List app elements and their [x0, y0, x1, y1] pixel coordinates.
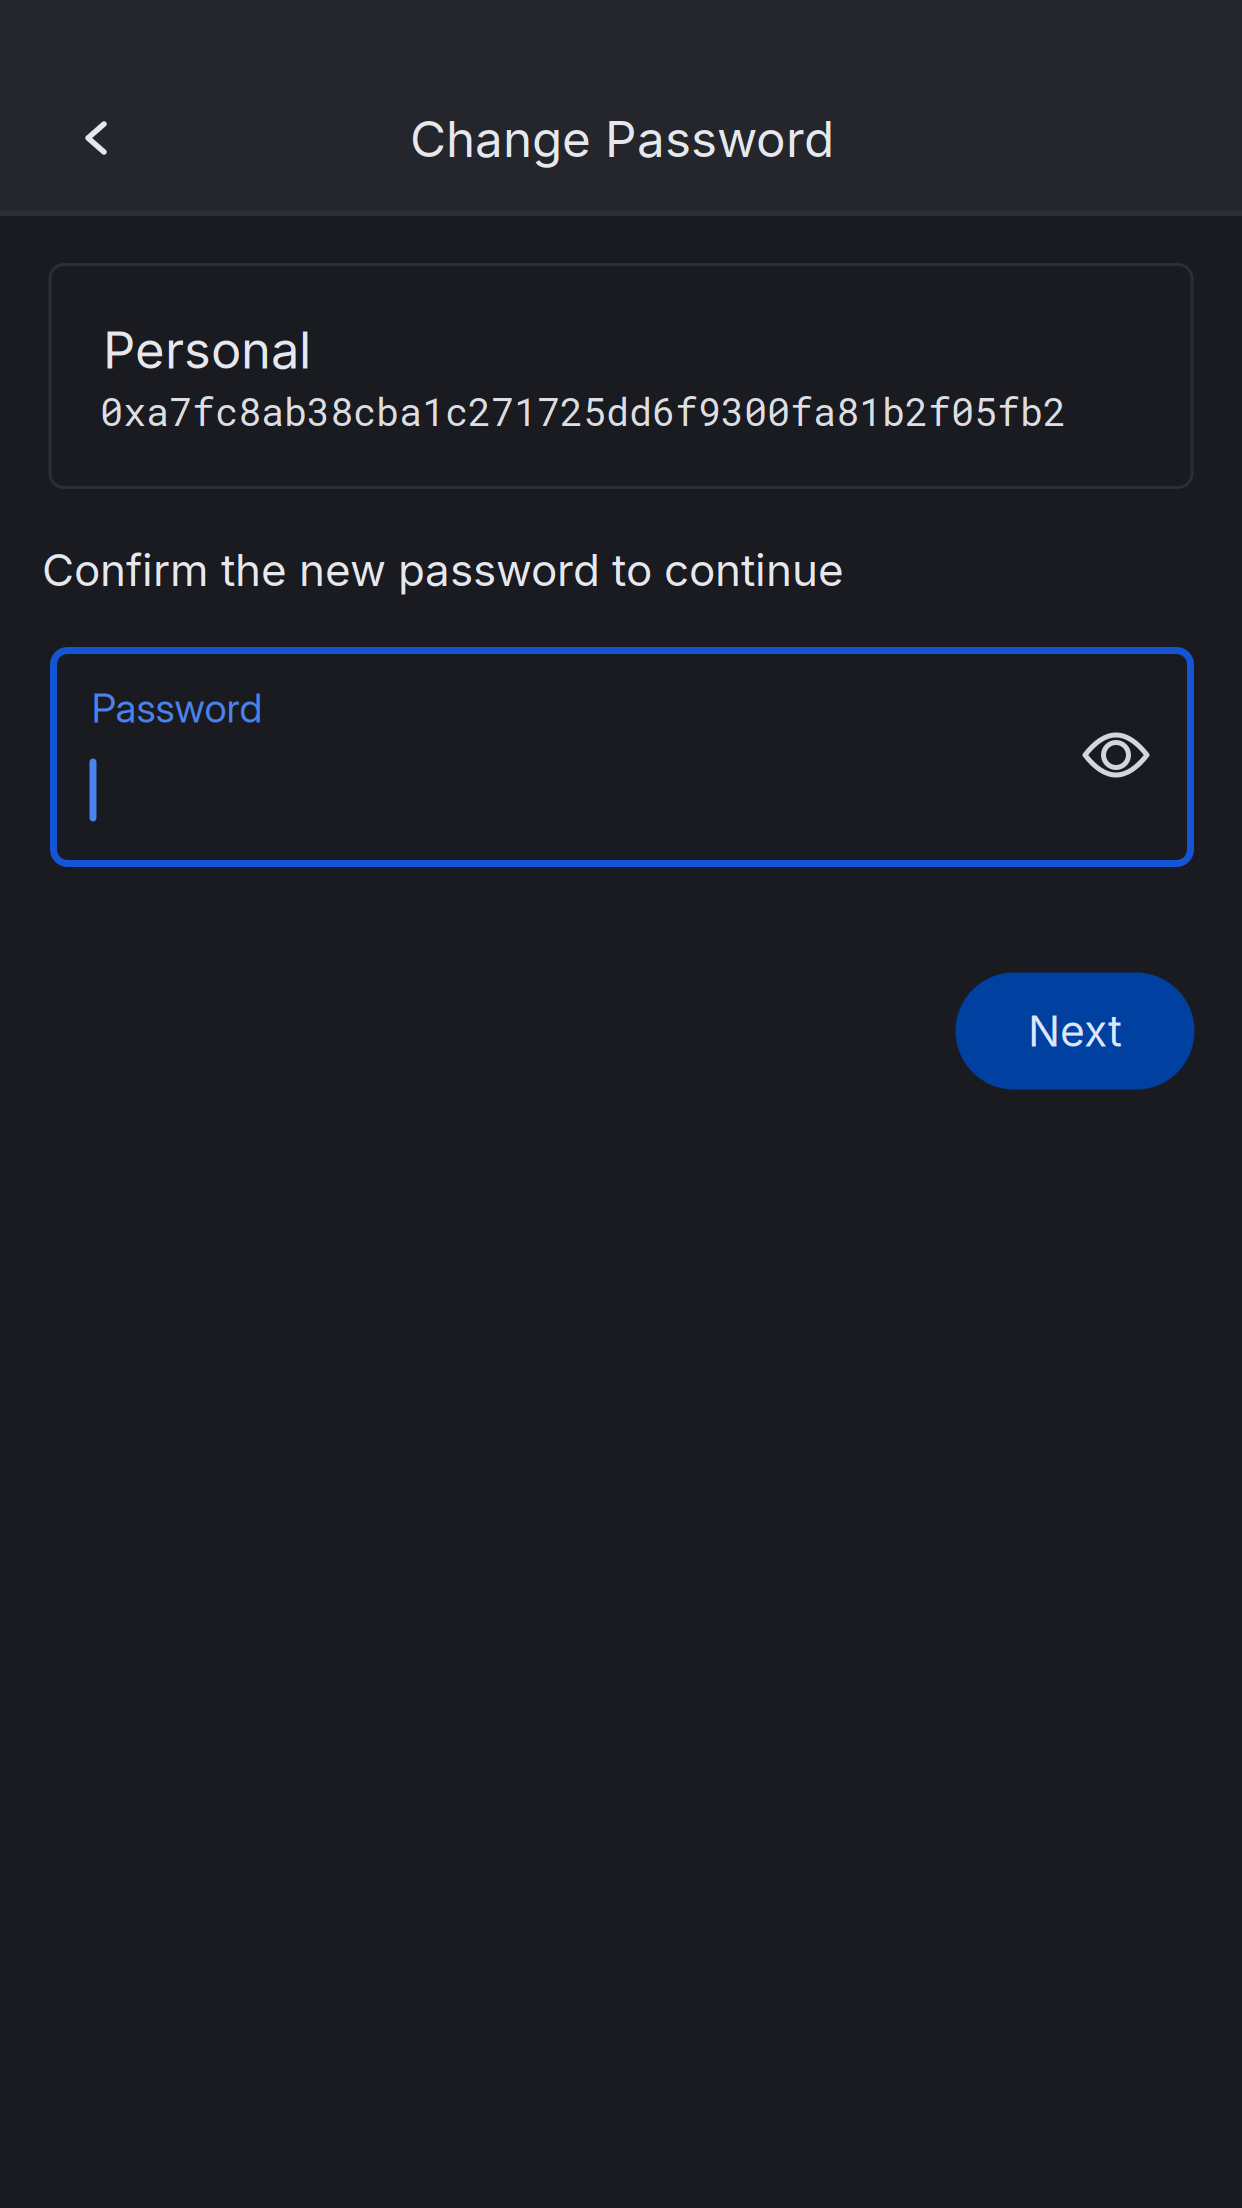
button[interactable]: Next	[955, 972, 1194, 1089]
staticText: Personal	[103, 319, 311, 381]
button[interactable]: Show password	[1057, 696, 1175, 814]
button[interactable]: Back	[37, 79, 155, 197]
staticText: Change Password	[410, 109, 834, 169]
staticText: Confirm the new password to continue	[42, 543, 844, 597]
staticText: 0xa7fc8ab38cba1c271725dd6f9300fa81b2f05f…	[100, 385, 1066, 436]
staticText: Password	[91, 684, 262, 732]
staticText: Next	[1028, 1005, 1122, 1057]
